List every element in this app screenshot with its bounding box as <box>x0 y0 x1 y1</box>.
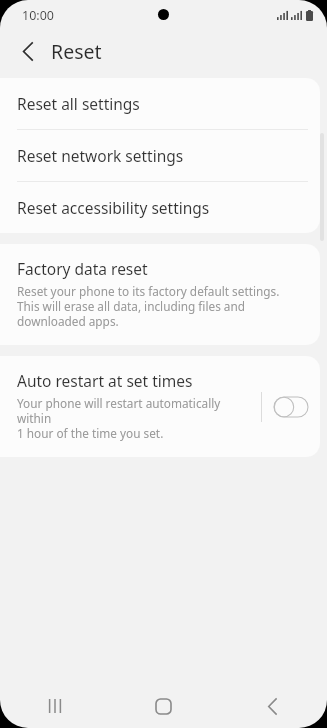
button[interactable]: Recent apps <box>0 684 109 728</box>
staticText: Reset <box>51 38 102 65</box>
button[interactable]: Reset network settings <box>0 130 320 181</box>
staticText: 10:00 <box>22 7 54 24</box>
staticText: Reset all settings <box>17 93 140 114</box>
button[interactable]: Back <box>10 33 46 69</box>
button[interactable]: Factory data reset <box>0 244 320 345</box>
staticText: Your phone will restart automatically wi… <box>17 395 253 441</box>
button[interactable]: Reset all settings <box>0 78 320 129</box>
button[interactable]: Auto restart at set times <box>0 356 261 457</box>
button[interactable]: Reset accessibility settings <box>0 182 320 233</box>
staticText: Reset your phone to its factory default … <box>17 283 302 329</box>
button[interactable]: Auto restart at set times toggle <box>262 383 320 431</box>
staticText: Factory data reset <box>17 258 148 279</box>
staticText: Reset network settings <box>17 145 184 166</box>
button[interactable]: Back <box>218 684 327 728</box>
button[interactable]: Home <box>109 684 218 728</box>
staticText: Reset accessibility settings <box>17 197 210 218</box>
staticText: Auto restart at set times <box>17 370 193 391</box>
